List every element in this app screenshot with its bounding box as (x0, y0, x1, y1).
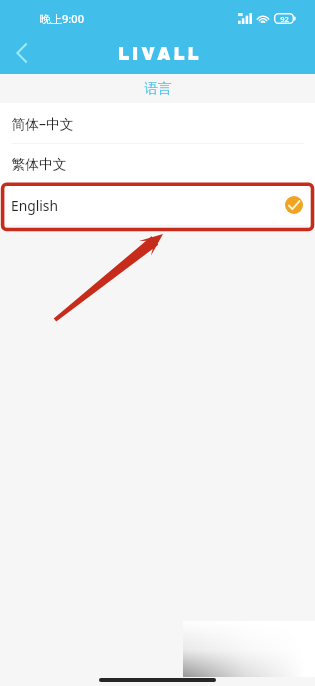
staticText: English (11, 196, 58, 215)
button[interactable]: 繁体中文 (0, 144, 315, 184)
other: LIVALL (119, 47, 209, 60)
button[interactable]: 简体–中文 (0, 103, 315, 143)
button[interactable]: 语言 (0, 74, 315, 103)
staticText: 92 (280, 14, 289, 24)
button[interactable]: Back (0, 31, 42, 73)
staticText: 晚上9:00 (40, 11, 84, 26)
staticText: 语言 (144, 80, 172, 97)
staticText: 繁体中文 (11, 156, 67, 173)
button[interactable]: English (0, 185, 315, 225)
staticText: 简体–中文 (11, 114, 74, 133)
